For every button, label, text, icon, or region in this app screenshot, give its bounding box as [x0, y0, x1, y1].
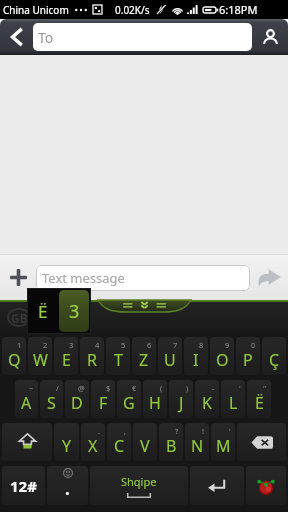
- staticText: ": [263, 383, 267, 393]
- button[interactable]: Text message: [36, 265, 250, 291]
- button[interactable]: 4: [80, 337, 104, 375]
- button[interactable]: .: [81, 423, 105, 461]
- staticText: 0: [251, 340, 256, 350]
- staticText: 3: [69, 299, 80, 324]
- staticText: 8: [199, 340, 204, 350]
- button[interactable]: Ç: [262, 337, 286, 375]
- staticText: Q: [8, 349, 21, 371]
- button[interactable]: Emoji: [246, 466, 286, 505]
- staticText: Ç: [269, 349, 280, 371]
- staticText: @: [78, 383, 85, 393]
- staticText: B: [166, 435, 177, 457]
- staticText: 2: [43, 340, 48, 350]
- button[interactable]: Back: [0, 19, 33, 55]
- staticText: D: [71, 392, 83, 414]
- staticText: ~: [29, 383, 34, 393]
- staticText: ): [186, 383, 189, 393]
- button[interactable]: .: [47, 466, 88, 505]
- button[interactable]: $: [91, 380, 115, 418]
- staticText: GB: [11, 310, 28, 326]
- staticText: Y: [62, 435, 72, 457]
- staticText: -: [212, 383, 215, 393]
- staticText: W: [33, 349, 48, 371]
- button[interactable]: ~: [15, 380, 38, 418]
- staticText: 0.02K/s: [115, 3, 150, 17]
- staticText: ?: [175, 426, 179, 436]
- staticText: (: [160, 383, 163, 393]
- staticText: ': [229, 426, 231, 436]
- button[interactable]: /: [40, 380, 63, 418]
- button[interactable]: 2: [28, 337, 52, 375]
- button[interactable]: Enter: [190, 466, 244, 505]
- staticText: .: [65, 477, 70, 500]
- button[interactable]: ': [221, 380, 245, 418]
- staticText: M: [216, 435, 231, 457]
- button[interactable]: Contacts: [252, 19, 288, 55]
- staticText: 6:18PM: [219, 2, 258, 17]
- staticText: 7: [173, 340, 178, 350]
- staticText: 12#: [10, 476, 37, 496]
- staticText: P: [243, 349, 253, 371]
- staticText: N: [191, 435, 204, 457]
- button[interactable]: ?: [159, 423, 183, 461]
- staticText: U: [164, 349, 176, 371]
- staticText: T: [114, 349, 123, 371]
- staticText: ': [239, 383, 241, 393]
- staticText: E: [62, 349, 71, 371]
- staticText: 5: [121, 340, 126, 350]
- staticText: Ë: [255, 392, 264, 414]
- button[interactable]: Send: [250, 255, 288, 300]
- staticText: Z: [139, 349, 149, 371]
- staticText: €: [132, 383, 137, 393]
- button[interactable]: (: [143, 380, 167, 418]
- button[interactable]: 5: [106, 337, 130, 375]
- staticText: To: [38, 28, 54, 47]
- staticText: O: [216, 349, 229, 371]
- staticText: C: [114, 435, 125, 457]
- staticText: I: [193, 349, 199, 371]
- button[interactable]: !: [185, 423, 209, 461]
- staticText: 3: [69, 340, 74, 350]
- staticText: 6: [147, 340, 152, 350]
- staticText: L: [229, 392, 238, 414]
- staticText: 1: [17, 340, 22, 350]
- button[interactable]: 3: [54, 337, 78, 375]
- button[interactable]: 1: [2, 337, 26, 375]
- staticText: A: [21, 392, 32, 414]
- button[interactable]: @: [65, 380, 89, 418]
- staticText: J: [179, 392, 184, 414]
- staticText: R: [87, 349, 97, 371]
- button[interactable]: Y: [54, 423, 79, 461]
- button[interactable]: 6: [132, 337, 156, 375]
- button[interactable]: Add attachment: [0, 255, 36, 300]
- button[interactable]: ': [211, 423, 235, 461]
- button[interactable]: To: [33, 23, 252, 51]
- staticText: F: [99, 392, 108, 414]
- button[interactable]: €: [117, 380, 141, 418]
- staticText: 4: [95, 340, 100, 350]
- staticText: S: [47, 392, 56, 414]
- button[interactable]: 9: [210, 337, 234, 375]
- button[interactable]: V: [133, 423, 157, 461]
- staticText: .: [98, 426, 101, 436]
- staticText: China Unicom: [3, 3, 69, 17]
- button[interactable]: 0: [236, 337, 260, 375]
- staticText: /: [56, 383, 59, 393]
- button[interactable]: ,: [107, 423, 131, 461]
- button[interactable]: Shqipe: [90, 466, 188, 505]
- staticText: 9: [225, 340, 230, 350]
- button[interactable]: Backspace: [237, 423, 286, 461]
- button[interactable]: 8: [184, 337, 208, 375]
- staticText: $: [106, 383, 111, 393]
- staticText: H: [149, 392, 161, 414]
- staticText: Text message: [42, 269, 125, 287]
- button[interactable]: ": [247, 380, 271, 418]
- button[interactable]: Shift: [2, 423, 52, 461]
- button[interactable]: 7: [158, 337, 182, 375]
- button[interactable]: ): [169, 380, 193, 418]
- button[interactable]: -: [195, 380, 219, 418]
- staticText: G: [123, 392, 135, 414]
- staticText: K: [202, 392, 212, 414]
- button[interactable]: 12#: [2, 466, 45, 505]
- staticText: !: [202, 426, 205, 436]
